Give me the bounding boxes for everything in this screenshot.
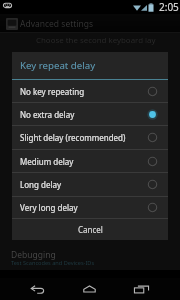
- staticText: 2:05: [159, 0, 179, 14]
- button[interactable]: Medium delay: [12, 150, 168, 172]
- staticText: Choose the second keyboard lay: [36, 35, 156, 46]
- staticText: Test Scancodes and Devices-IDs: [11, 259, 95, 267]
- staticText: Debugging: [11, 249, 56, 261]
- button[interactable]: Cancel: [12, 219, 168, 240]
- button[interactable]: No extra delay: [12, 103, 168, 125]
- staticText: Medium delay: [20, 156, 142, 167]
- staticText: No key repeating: [20, 86, 142, 97]
- staticText: Long delay: [20, 179, 142, 190]
- button[interactable]: Home: [63, 278, 115, 300]
- staticText: Very long delay: [20, 202, 142, 213]
- staticText: Slight delay (recommended): [20, 132, 142, 143]
- button[interactable]: No key repeating: [12, 80, 168, 102]
- button[interactable]: Slight delay (recommended): [12, 126, 168, 149]
- button[interactable]: Long delay: [12, 173, 168, 196]
- staticText: Advanced settings: [20, 18, 94, 30]
- staticText: Cancel: [78, 224, 103, 235]
- button[interactable]: Back: [12, 278, 63, 300]
- button[interactable]: Recents: [115, 278, 167, 300]
- staticText: Key repeat delay: [20, 59, 96, 72]
- button[interactable]: Very long delay: [12, 197, 168, 218]
- staticText: No extra delay: [20, 109, 142, 120]
